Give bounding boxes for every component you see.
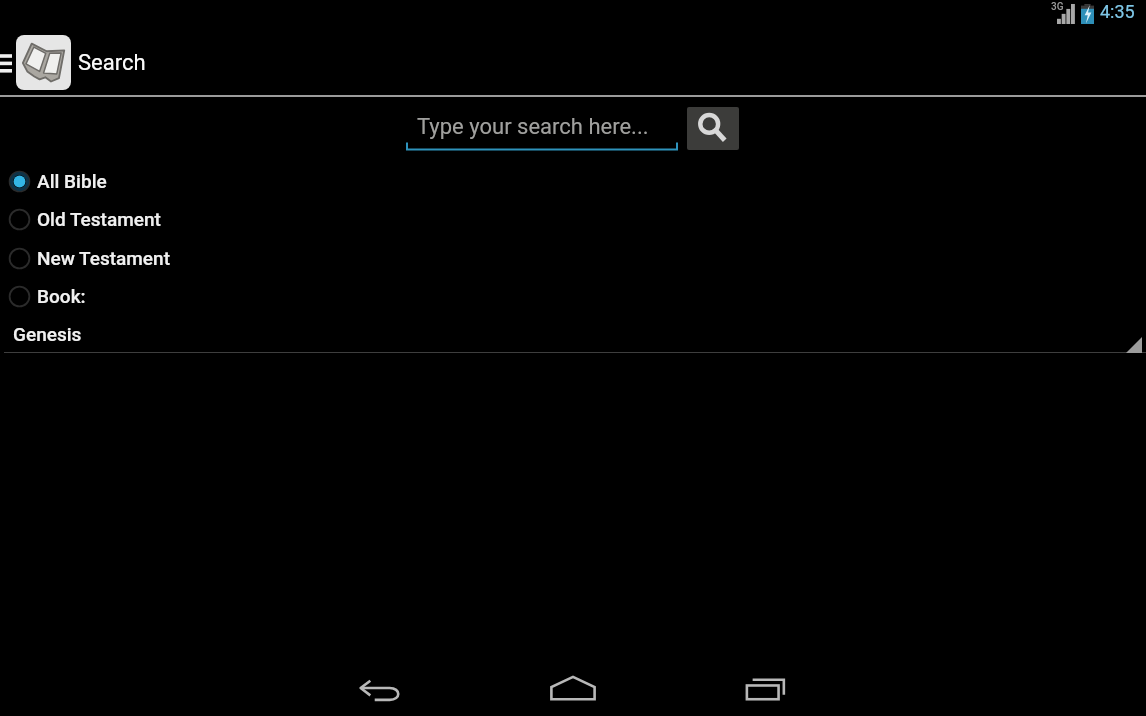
staticText: Book: [37, 285, 86, 307]
button[interactable]: Genesis [0, 318, 1146, 354]
button[interactable]: Search [687, 107, 739, 150]
button[interactable]: Back [358, 673, 402, 705]
button[interactable]: Book: [0, 277, 1146, 315]
staticText: 3G [1051, 1, 1064, 13]
button[interactable]: Recent apps [744, 673, 792, 705]
button[interactable]: All Bible [0, 162, 1146, 200]
staticText: Search [78, 50, 146, 76]
button[interactable]: Type your search here... [406, 112, 678, 150]
button[interactable]: Old Testament [0, 200, 1146, 238]
button[interactable]: New Testament [0, 239, 1146, 277]
staticText: 4:35 [1100, 1, 1135, 22]
staticText: Genesis [13, 323, 82, 345]
staticText: Old Testament [37, 208, 161, 230]
button[interactable]: Navigation menu [0, 30, 15, 94]
staticText: All Bible [37, 170, 107, 192]
button[interactable]: Search [16, 31, 162, 95]
staticText: New Testament [37, 247, 170, 269]
staticText: Type your search here... [417, 114, 649, 140]
button[interactable]: Home [549, 673, 597, 705]
